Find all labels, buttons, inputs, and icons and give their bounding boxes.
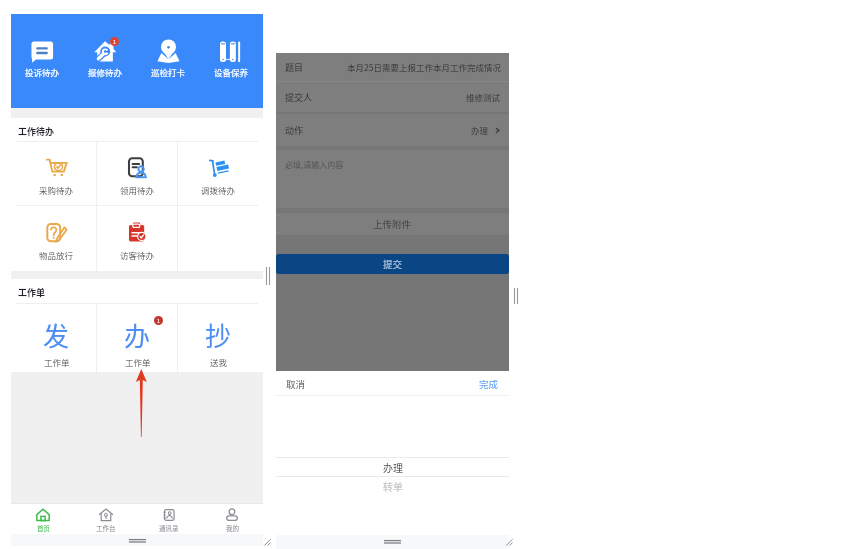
button[interactable]: 工作台 <box>74 504 137 534</box>
staticText: 工作单 <box>44 356 70 368</box>
staticText: 访客待办 <box>120 249 155 261</box>
button[interactable]: 题目 <box>276 53 509 81</box>
staticText: 抄 <box>205 316 232 354</box>
button[interactable]: 投诉待办 <box>11 14 74 108</box>
staticText: 报修待办 <box>88 66 123 78</box>
staticText: 送我 <box>210 356 228 368</box>
button[interactable]: 取消 <box>276 373 316 395</box>
button[interactable]: 首页 <box>11 504 74 534</box>
staticText: 工作台 <box>96 523 116 532</box>
staticText: 提交人 <box>285 91 313 104</box>
staticText: 提交 <box>383 257 403 271</box>
staticText: 我的 <box>226 523 239 532</box>
staticText: 本月25日需要上报工作本月工作完成情况 <box>347 61 501 73</box>
button[interactable]: 调拨待办 <box>178 142 258 205</box>
button[interactable]: 办理 <box>276 458 509 476</box>
button[interactable]: 通讯录 <box>137 504 200 534</box>
button[interactable]: 完成 <box>469 373 509 395</box>
staticText: 投诉待办 <box>25 66 60 78</box>
staticText: 调拨待办 <box>201 184 236 196</box>
staticText: 首页 <box>37 523 50 532</box>
button[interactable]: 采购待办 <box>16 142 96 205</box>
button[interactable]: 我的 <box>200 504 263 534</box>
button[interactable]: 办 <box>97 304 177 372</box>
button[interactable]: 设备保养 <box>200 14 263 108</box>
button[interactable]: 必填,请输入内容 <box>276 150 509 208</box>
staticText: 工作单 <box>125 356 151 368</box>
staticText: 完成 <box>479 377 499 391</box>
staticText: 巡检打卡 <box>151 66 186 78</box>
button[interactable]: 1 <box>74 14 137 108</box>
staticText: 转单 <box>383 479 403 493</box>
button[interactable]: 提交人 <box>276 82 509 112</box>
staticText: 维修测试 <box>466 91 501 103</box>
button[interactable]: 转单 <box>276 477 509 495</box>
staticText: 办理 <box>471 124 489 136</box>
button[interactable]: 发 <box>16 304 96 372</box>
staticText: 领用待办 <box>120 184 155 196</box>
staticText: 办理 <box>383 460 403 474</box>
button[interactable]: 领用待办 <box>97 142 177 205</box>
button[interactable]: 提交 <box>276 254 509 274</box>
staticText: 设备保养 <box>214 66 249 78</box>
staticText: 办 <box>124 316 151 354</box>
button[interactable]: 巡检打卡 <box>137 14 200 108</box>
staticText: 题目 <box>285 61 304 74</box>
button[interactable]: 上传附件 <box>276 213 509 235</box>
button[interactable]: 动作 <box>276 114 509 146</box>
staticText: 动作 <box>285 124 304 137</box>
button[interactable]: 访客待办 <box>97 206 177 271</box>
staticText: 采购待办 <box>39 184 74 196</box>
staticText: 上传附件 <box>373 217 412 231</box>
staticText: 物品放行 <box>39 249 74 261</box>
staticText: 1 <box>157 317 160 324</box>
button[interactable]: 物品放行 <box>16 206 96 271</box>
staticText: 取消 <box>286 377 306 391</box>
staticText: 工作待办 <box>18 125 55 138</box>
button[interactable]: 抄 <box>178 304 258 372</box>
staticText: 发 <box>43 316 70 354</box>
staticText: 通讯录 <box>159 523 179 532</box>
staticText: 工作单 <box>18 286 46 299</box>
staticText: 1 <box>113 38 116 45</box>
staticText: 必填,请输入内容 <box>285 159 344 171</box>
